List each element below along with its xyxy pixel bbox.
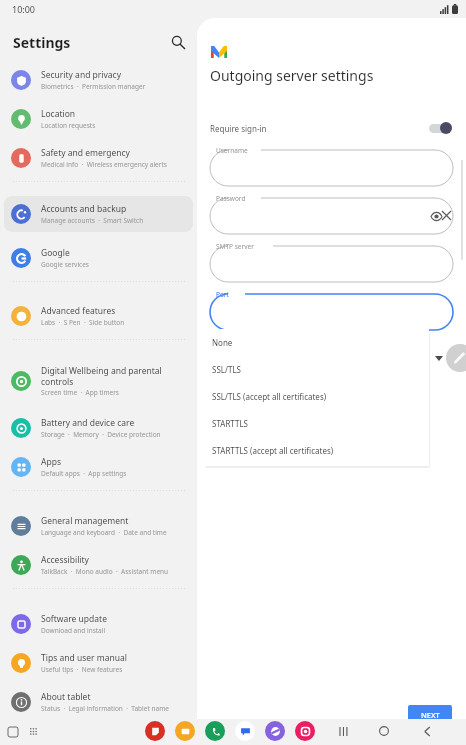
staticText: Require sign-in xyxy=(210,123,267,134)
staticText: Safety and emergency xyxy=(41,147,130,159)
staticText: Useful tips · New features xyxy=(41,665,123,674)
button[interactable]: browser xyxy=(265,721,285,741)
staticText: Security type xyxy=(210,339,253,349)
button[interactable]: Advanced features xyxy=(4,298,193,334)
staticText: Digital Wellbeing and parental controls xyxy=(41,365,162,387)
staticText: Default apps · App settings xyxy=(41,469,127,478)
button[interactable]: Settings xyxy=(13,33,71,52)
button[interactable]: Safety and emergency xyxy=(4,140,193,176)
button[interactable]: flip xyxy=(145,721,165,741)
staticText: Screen time · App timers xyxy=(41,388,119,397)
staticText: SSL/TLS xyxy=(212,364,241,375)
staticText: SSL/TLS (accept all certificates) xyxy=(212,391,327,402)
button[interactable]: Digital Wellbeing and parental controls xyxy=(4,358,193,404)
staticText: Tips and user manual xyxy=(41,652,127,664)
button[interactable]: Password xyxy=(210,198,453,234)
button[interactable]: Recents xyxy=(5,724,21,740)
staticText: Password xyxy=(216,194,246,203)
button[interactable]: Tips and user manual xyxy=(4,645,193,681)
staticText: Accessibility xyxy=(41,554,89,566)
staticText: Download and install xyxy=(41,626,106,635)
button[interactable]: Port xyxy=(210,294,453,330)
staticText: Language and keyboard · Date and time xyxy=(41,528,167,537)
staticText: NEXT xyxy=(421,710,440,719)
staticText: TalkBack · Mono audio · Assistant menu xyxy=(41,567,169,576)
button[interactable]: Security and privacy xyxy=(4,62,193,98)
button[interactable]: folder xyxy=(175,721,195,741)
staticText: Medical info · Wireless emergency alerts xyxy=(41,160,167,169)
button[interactable]: Software update xyxy=(4,606,193,642)
staticText: SMTP server xyxy=(216,242,254,251)
button[interactable]: Location xyxy=(4,101,193,137)
button[interactable]: All apps xyxy=(26,724,42,740)
button[interactable]: Show password xyxy=(429,209,443,223)
button[interactable]: Accessibility xyxy=(4,547,193,583)
staticText: Security and privacy xyxy=(41,69,122,81)
button[interactable]: None xyxy=(204,329,429,356)
staticText: General management xyxy=(41,515,129,527)
button[interactable]: Google xyxy=(4,240,193,276)
staticText: Google xyxy=(41,247,70,259)
staticText: Battery and device care xyxy=(41,417,135,429)
button[interactable]: Username xyxy=(210,150,453,186)
staticText: Outgoing server settings xyxy=(210,66,374,85)
button[interactable]: Battery and device care xyxy=(4,410,193,446)
staticText: Accounts and backup xyxy=(41,203,127,215)
staticText: Port xyxy=(216,290,229,299)
staticText: Apps xyxy=(41,456,61,468)
staticText: STARTTLS xyxy=(212,418,249,429)
button[interactable]: STARTTLS (accept all certificates) xyxy=(204,437,429,464)
button[interactable]: phone xyxy=(205,721,225,741)
staticText: Status · Legal information · Tablet name xyxy=(41,704,169,713)
staticText: Manage accounts · Smart Switch xyxy=(41,216,144,225)
staticText: Advanced features xyxy=(41,305,116,317)
button[interactable]: Accounts and backup xyxy=(4,196,193,232)
button[interactable]: insta xyxy=(295,721,315,741)
staticText: Username xyxy=(216,146,248,155)
button[interactable]: General management xyxy=(4,508,193,544)
button[interactable]: SSL/TLS (accept all certificates) xyxy=(204,383,429,410)
staticText: Google services xyxy=(41,260,89,269)
button[interactable]: NEXT xyxy=(408,705,452,719)
staticText: Storage · Memory · Device protection xyxy=(41,430,161,439)
staticText: Labs · S Pen · Side button xyxy=(41,318,125,327)
staticText: Location xyxy=(41,108,76,120)
button[interactable]: Search xyxy=(166,30,190,54)
button[interactable]: Recent apps xyxy=(334,722,352,740)
button[interactable]: About tablet xyxy=(4,684,193,720)
button[interactable]: SMTP server xyxy=(210,246,453,282)
button[interactable]: msg xyxy=(235,721,255,741)
staticText: Location requests xyxy=(41,121,96,130)
staticText: Software update xyxy=(41,613,107,625)
staticText: About tablet xyxy=(41,691,91,703)
staticText: Biometrics · Permission manager xyxy=(41,82,146,91)
button[interactable]: SSL/TLS xyxy=(204,356,429,383)
button[interactable]: Clear xyxy=(437,206,455,224)
staticText: STARTTLS (accept all certificates) xyxy=(212,445,334,456)
staticText: 10:00 xyxy=(12,3,36,15)
button[interactable]: Home xyxy=(375,722,393,740)
button[interactable]: Edit xyxy=(446,344,466,372)
button[interactable]: STARTTLS xyxy=(204,410,429,437)
button[interactable]: Require sign-in xyxy=(210,116,453,140)
button[interactable]: Apps xyxy=(4,449,193,485)
staticText: None xyxy=(212,337,233,348)
button[interactable]: Back xyxy=(418,722,436,740)
